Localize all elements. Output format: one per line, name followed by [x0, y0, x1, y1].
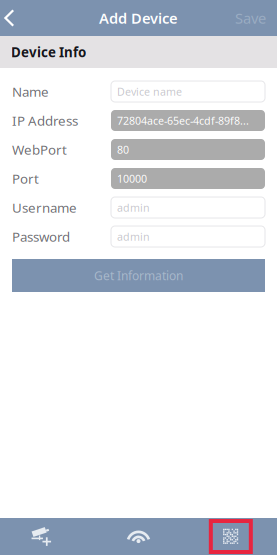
staticText: Port	[12, 170, 39, 187]
staticText: Name	[12, 83, 49, 100]
button[interactable]: Wi-Fi	[92, 518, 185, 555]
button[interactable]: Back	[0, 0, 42, 36]
button[interactable]: Get Information	[12, 259, 265, 292]
staticText: WebPort	[12, 141, 67, 158]
staticText: 10000	[117, 171, 147, 186]
staticText: admin	[117, 229, 150, 244]
button[interactable]: Add Camera	[0, 518, 92, 555]
staticText: Save	[235, 8, 266, 28]
button[interactable]: Scan QR Code	[185, 518, 277, 555]
staticText: Get Information	[94, 267, 183, 283]
staticText: admin	[117, 200, 150, 215]
staticText: IP Address	[12, 112, 78, 129]
staticText: 80	[117, 142, 129, 157]
staticText: Password	[12, 228, 70, 245]
staticText: 72804ace-65ec-4cdf-89f8...	[117, 113, 249, 128]
staticText: Device name	[117, 84, 182, 99]
staticText: Username	[12, 199, 77, 216]
staticText: Add Device	[99, 8, 178, 28]
staticText: Device Info	[11, 43, 86, 61]
button[interactable]: Save	[225, 0, 277, 36]
